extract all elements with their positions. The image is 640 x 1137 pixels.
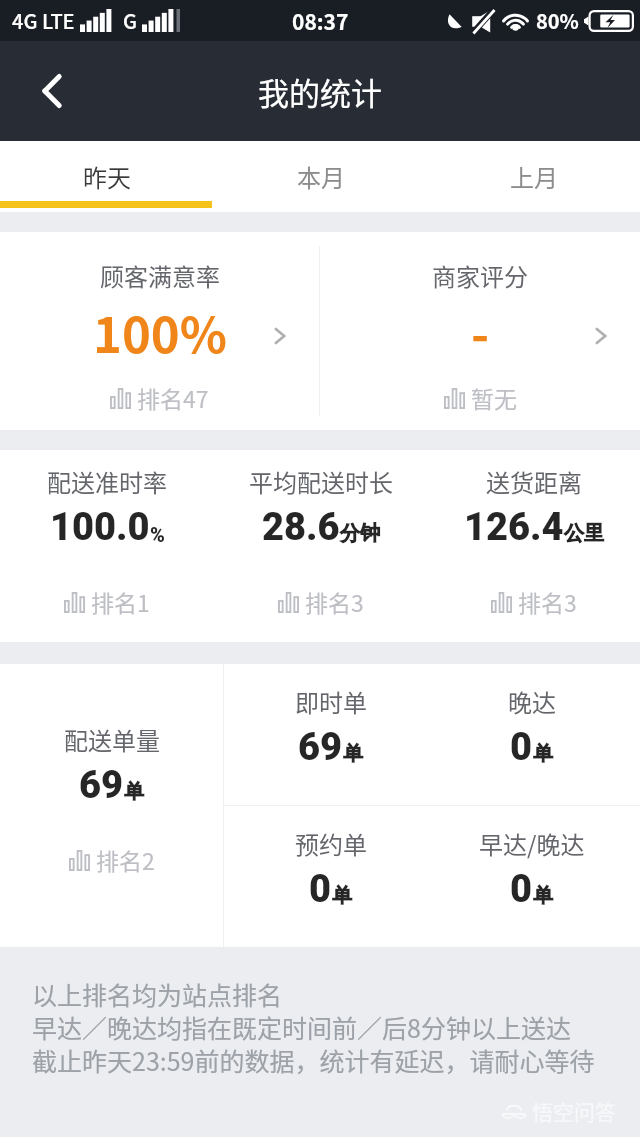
button[interactable]: 昨天 bbox=[0, 141, 214, 212]
staticText: 预约单 bbox=[295, 826, 367, 861]
staticText: 排名3 bbox=[305, 585, 364, 618]
staticText: 排名1 bbox=[91, 585, 150, 618]
staticText: 昨天 bbox=[83, 159, 131, 194]
staticText: 0 bbox=[309, 867, 332, 912]
staticText: 悟空问答 bbox=[532, 1096, 616, 1126]
staticText: 我的统计 bbox=[258, 69, 382, 114]
staticText: 本月 bbox=[297, 159, 345, 194]
button[interactable]: 上月 bbox=[427, 141, 640, 212]
staticText: 28.6 bbox=[262, 505, 340, 550]
staticText: 126.4 bbox=[464, 505, 564, 550]
button[interactable]: 配送单量 bbox=[0, 664, 223, 947]
staticText: 配送准时率 bbox=[47, 464, 167, 499]
button[interactable]: 晚达 bbox=[431, 664, 632, 805]
staticText: - bbox=[471, 296, 490, 367]
staticText: 顾客满意率 bbox=[100, 258, 220, 293]
staticText: 100% bbox=[93, 296, 227, 367]
staticText: 配送单量 bbox=[64, 722, 160, 757]
staticText: 单 bbox=[533, 741, 553, 766]
staticText: 早达/晚达 bbox=[479, 826, 585, 861]
staticText: 69 bbox=[79, 763, 124, 808]
staticText: 即时单 bbox=[295, 684, 367, 719]
button[interactable]: 平均配送时长 bbox=[214, 450, 427, 642]
staticText: 送货距离 bbox=[486, 464, 582, 499]
staticText: % bbox=[150, 523, 165, 546]
staticText: 单 bbox=[343, 741, 363, 766]
staticText: 100.0 bbox=[50, 505, 150, 550]
button[interactable]: 即时单 bbox=[230, 664, 431, 805]
staticText: 暂无 bbox=[471, 381, 517, 414]
staticText: 排名47 bbox=[137, 381, 209, 414]
staticText: 晚达 bbox=[508, 684, 556, 719]
button[interactable]: 商家评分 bbox=[320, 232, 640, 430]
button[interactable]: 预约单 bbox=[230, 806, 431, 947]
staticText: 排名3 bbox=[518, 585, 577, 618]
staticText: 单 bbox=[124, 779, 144, 804]
staticText: 4G LTE bbox=[12, 6, 75, 35]
staticText: 平均配送时长 bbox=[249, 464, 393, 499]
staticText: 单 bbox=[533, 883, 553, 908]
staticText: 69 bbox=[298, 725, 343, 770]
staticText: 08:37 bbox=[292, 6, 349, 36]
staticText: G bbox=[123, 6, 138, 35]
button[interactable]: 本月 bbox=[214, 141, 427, 212]
staticText: 上月 bbox=[510, 159, 558, 194]
button[interactable]: 送货距离 bbox=[427, 450, 640, 642]
staticText: 80% bbox=[536, 6, 579, 35]
staticText: 排名2 bbox=[96, 843, 155, 876]
button[interactable]: 顾客满意率 bbox=[0, 232, 319, 430]
button[interactable]: 早达/晚达 bbox=[431, 806, 632, 947]
staticText: 分钟 bbox=[340, 521, 380, 546]
staticText: 公里 bbox=[564, 521, 604, 546]
staticText: 商家评分 bbox=[432, 258, 528, 293]
staticText: 0 bbox=[510, 725, 533, 770]
button[interactable]: Back bbox=[14, 53, 90, 129]
staticText: 以上排名均为站点排名 早达／晚达均指在既定时间前／后8分钟以上送达 截止昨天23… bbox=[32, 976, 595, 1079]
staticText: 0 bbox=[510, 867, 533, 912]
staticText: 单 bbox=[332, 883, 352, 908]
button[interactable]: 配送准时率 bbox=[0, 450, 214, 642]
